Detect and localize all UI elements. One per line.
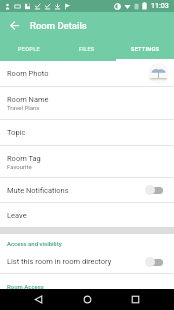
staticText: 11:03 [151, 2, 169, 10]
staticText: SETTINGS [131, 46, 160, 53]
button[interactable]: FILES [58, 38, 116, 61]
button[interactable]: Mute Notifications [0, 178, 174, 202]
staticText: Access and visibility [7, 240, 62, 247]
staticText: Favourite [7, 163, 32, 170]
button[interactable]: Topic [0, 120, 174, 145]
staticText: PEOPLE [18, 46, 40, 53]
button[interactable]: PEOPLE [0, 38, 58, 61]
staticText: Travel Plans [7, 104, 40, 111]
staticText: Topic [7, 128, 26, 137]
staticText: FILES [79, 46, 95, 53]
button[interactable]: Back [21, 289, 55, 310]
button[interactable]: Room Name [0, 87, 174, 119]
staticText: Room Name [7, 95, 49, 104]
staticText: Room Details [30, 20, 87, 31]
button[interactable]: Recent apps [118, 289, 152, 310]
staticText: Mute Notifications [7, 186, 69, 195]
staticText: List this room in room directory [7, 257, 112, 266]
button[interactable]: Leave [0, 203, 174, 227]
staticText: Room Tag [7, 154, 41, 163]
staticText: Room Photo [7, 69, 49, 78]
staticText: Room Access [7, 283, 44, 290]
button[interactable]: SETTINGS [116, 38, 174, 61]
staticText: Leave [7, 211, 27, 220]
button[interactable]: Room Photo [0, 61, 174, 86]
button[interactable]: Room Tag [0, 146, 174, 177]
button[interactable]: Home [70, 289, 104, 310]
button[interactable]: Back [3, 14, 25, 36]
button[interactable]: List this room in room directory [0, 250, 174, 273]
